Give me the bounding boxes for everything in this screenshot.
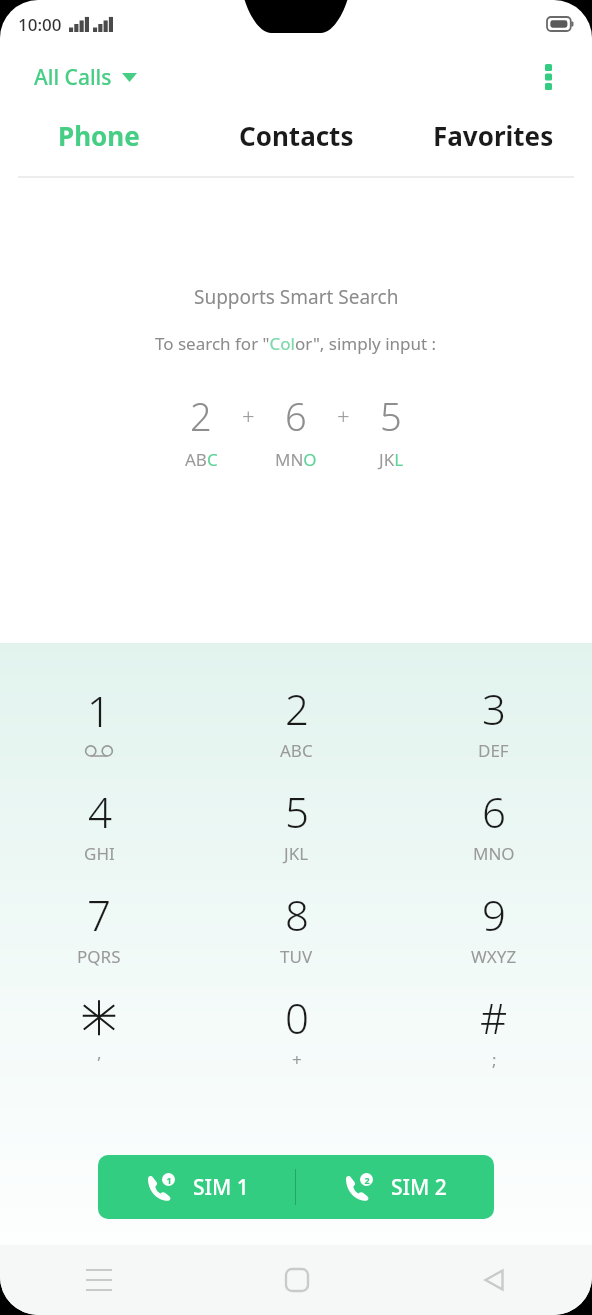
button[interactable]: 6: [395, 772, 592, 875]
staticText: PQRS: [77, 945, 121, 968]
button[interactable]: Contacts: [198, 106, 395, 164]
staticText: 6: [482, 783, 506, 840]
button[interactable]: Recent apps: [0, 1245, 198, 1315]
staticText: ABC: [185, 448, 218, 471]
button[interactable]: ,: [0, 978, 198, 1081]
button[interactable]: More options: [526, 55, 570, 99]
staticText: 8: [285, 886, 309, 943]
button[interactable]: 8: [198, 875, 395, 978]
staticText: SIM 2: [391, 1173, 447, 1202]
staticText: +: [292, 1048, 302, 1071]
button[interactable]: 4: [0, 772, 198, 875]
button[interactable]: 1: [0, 669, 198, 772]
staticText: ,: [97, 1041, 102, 1064]
staticText: 7: [87, 886, 111, 943]
staticText: +: [242, 401, 255, 431]
staticText: MNO: [473, 842, 515, 865]
staticText: Favorites: [433, 118, 554, 153]
button[interactable]: 3: [395, 669, 592, 772]
button[interactable]: 2: [296, 1155, 494, 1219]
staticText: TUV: [280, 945, 313, 968]
button[interactable]: 7: [0, 875, 198, 978]
staticText: 2: [190, 390, 212, 442]
staticText: DEF: [478, 739, 509, 762]
staticText: Supports Smart Search: [194, 284, 399, 310]
staticText: 4: [88, 783, 112, 840]
staticText: 5: [285, 783, 309, 840]
staticText: MNO: [275, 448, 317, 471]
staticText: ABC: [280, 739, 313, 762]
button[interactable]: Back: [395, 1245, 592, 1315]
staticText: JKL: [284, 842, 309, 865]
button[interactable]: Home: [198, 1245, 395, 1315]
staticText: WXYZ: [471, 945, 517, 968]
button[interactable]: Phone: [0, 106, 198, 164]
button[interactable]: All Calls: [30, 57, 141, 98]
staticText: 0: [285, 989, 309, 1046]
staticText: 1: [87, 682, 111, 739]
staticText: Contacts: [239, 118, 354, 153]
button[interactable]: 9: [395, 875, 592, 978]
button[interactable]: #: [395, 978, 592, 1081]
staticText: All Calls: [34, 63, 112, 92]
staticText: SIM 1: [193, 1173, 249, 1202]
staticText: 3: [482, 680, 506, 737]
button[interactable]: Favorites: [395, 106, 592, 164]
staticText: JKL: [379, 448, 404, 471]
staticText: 2: [364, 1174, 370, 1186]
staticText: 9: [482, 886, 506, 943]
button[interactable]: 0: [198, 978, 395, 1081]
staticText: 2: [285, 680, 309, 737]
staticText: 6: [285, 390, 307, 442]
staticText: 1: [166, 1174, 172, 1186]
button[interactable]: 5: [198, 772, 395, 875]
button[interactable]: 2: [198, 669, 395, 772]
staticText: ;: [492, 1048, 497, 1071]
button[interactable]: 1: [98, 1155, 295, 1219]
staticText: +: [337, 401, 350, 431]
staticText: To search for "Color", simply input :: [155, 332, 437, 355]
staticText: GHI: [84, 842, 115, 865]
staticText: Phone: [58, 118, 140, 153]
staticText: 10:00: [18, 13, 62, 36]
staticText: #: [480, 989, 508, 1046]
staticText: 5: [380, 390, 402, 442]
